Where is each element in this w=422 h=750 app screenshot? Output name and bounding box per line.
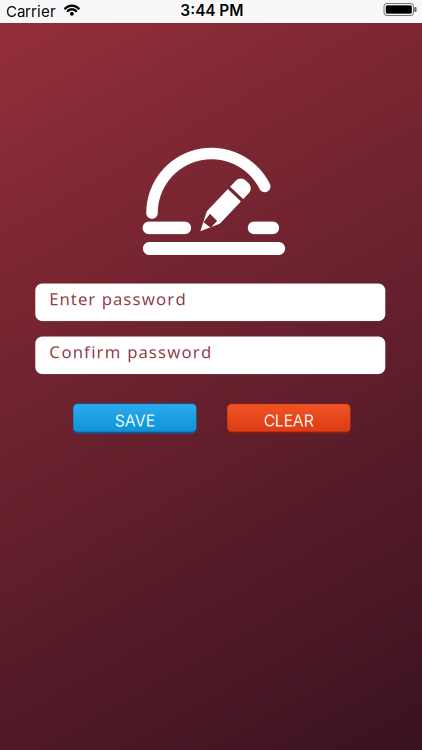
button[interactable]: CLEAR: [227, 403, 350, 434]
staticText: Carrier: [6, 2, 56, 20]
staticText: Confirm password: [49, 340, 211, 363]
button[interactable]: Confirm password: [35, 337, 385, 374]
button[interactable]: Enter password: [35, 284, 385, 321]
staticText: Enter password: [49, 287, 185, 310]
staticText: 3:44 PM: [180, 1, 243, 20]
staticText: CLEAR: [264, 411, 314, 430]
staticText: SAVE: [115, 411, 155, 430]
button[interactable]: SAVE: [73, 403, 196, 434]
